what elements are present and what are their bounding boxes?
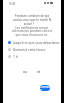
staticText: 9:30 bbox=[9, 2, 16, 6]
button[interactable]: Demain à cette heure bbox=[3, 46, 61, 53]
button[interactable]: ou bbox=[23, 70, 27, 74]
button[interactable]: 1 h bbox=[3, 53, 61, 60]
staticText: 1 h bbox=[13, 55, 18, 59]
staticText: que vous choisissez ici.. bbox=[3, 33, 61, 37]
staticText: Terminé bbox=[40, 85, 50, 91]
button[interactable]: et bbox=[37, 70, 41, 74]
staticText: Demain à cette heure bbox=[13, 48, 46, 52]
staticText: silencieuses pendant cette d bbox=[3, 29, 61, 33]
staticText: Jusqu'à ce que vous désactiviez bbox=[13, 41, 60, 45]
staticText: voulez-vous que le mode N bbox=[3, 18, 61, 22]
staticText: activé ? bbox=[0, 22, 58, 26]
staticText: Les notifications seront. bbox=[3, 26, 61, 30]
staticText: Pendant combien de tps bbox=[3, 14, 61, 18]
button[interactable]: Terminé bbox=[40, 85, 50, 91]
button[interactable]: Jusqu'à ce que vous désactiviez bbox=[3, 39, 61, 46]
